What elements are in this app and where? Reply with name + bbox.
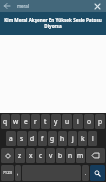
button[interactable]: q <box>1 114 10 129</box>
staticText: w <box>13 117 19 126</box>
staticText: y <box>54 117 58 126</box>
button[interactable]: d <box>28 131 37 146</box>
staticText: g <box>50 134 55 143</box>
button[interactable]: i <box>73 114 83 129</box>
button[interactable]: h <box>58 131 67 146</box>
button[interactable]: . <box>82 165 89 181</box>
staticText: v <box>49 151 53 160</box>
button[interactable]: b <box>56 148 65 163</box>
button[interactable]: c <box>36 148 45 163</box>
button[interactable]: w <box>11 114 20 129</box>
staticText: p <box>98 117 103 126</box>
button[interactable]: x <box>26 148 35 163</box>
staticText: m <box>77 151 84 160</box>
button[interactable]: f <box>38 131 47 146</box>
button[interactable]: Shift <box>1 148 14 163</box>
button[interactable]: Clear search <box>89 0 106 12</box>
button[interactable]: z <box>15 148 25 163</box>
staticText: h <box>60 134 65 143</box>
button[interactable]: k <box>78 131 87 146</box>
staticText: . <box>85 170 87 177</box>
button[interactable]: ?123 <box>1 165 14 181</box>
staticText: f <box>41 134 44 143</box>
button[interactable]: r <box>31 114 40 129</box>
staticText: x <box>29 151 33 160</box>
staticText: l <box>92 134 94 143</box>
button[interactable]: Back <box>0 0 14 12</box>
button[interactable]: o <box>84 114 94 129</box>
button[interactable]: j <box>68 131 77 146</box>
staticText: ?123 <box>3 170 13 176</box>
staticText: n <box>68 151 73 160</box>
staticText: u <box>65 117 70 126</box>
button[interactable]: g <box>48 131 57 146</box>
staticText: Kim Meral Akşener En Yüksek Sesle Patosu… <box>4 17 102 29</box>
button[interactable]: v <box>46 148 55 163</box>
button[interactable]: Search <box>90 165 105 181</box>
staticText: a <box>9 134 13 143</box>
staticText: c <box>39 151 43 160</box>
staticText: d <box>30 134 35 143</box>
button[interactable]: m <box>76 148 85 163</box>
button[interactable]: u <box>62 114 72 129</box>
button[interactable]: e <box>21 114 30 129</box>
staticText: i <box>77 117 79 126</box>
staticText: z <box>18 151 22 160</box>
staticText: b <box>58 151 63 160</box>
button[interactable]: a <box>6 131 16 146</box>
staticText: s <box>20 134 24 143</box>
staticText: r <box>34 117 37 126</box>
button[interactable]: l <box>88 131 97 146</box>
staticText: meral <box>17 3 29 9</box>
staticText: q <box>3 117 8 126</box>
button[interactable]: s <box>17 131 27 146</box>
staticText: e <box>24 117 28 126</box>
button[interactable]: n <box>66 148 75 163</box>
button[interactable]: Backspace <box>86 148 105 163</box>
button[interactable]: p <box>95 114 105 129</box>
staticText: k <box>81 134 85 143</box>
staticText: t <box>44 117 47 126</box>
button[interactable]: , <box>15 165 21 181</box>
button[interactable]: y <box>51 114 61 129</box>
button[interactable]: t <box>41 114 50 129</box>
staticText: o <box>87 117 91 126</box>
staticText: , <box>17 170 19 177</box>
staticText: j <box>72 134 74 143</box>
